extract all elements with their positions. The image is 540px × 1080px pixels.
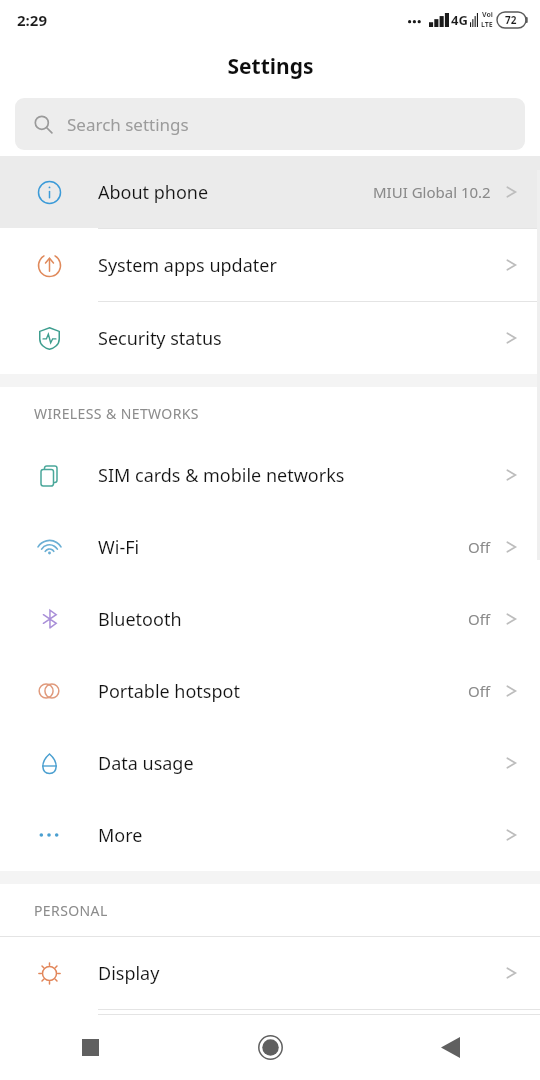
staticText: PERSONAL xyxy=(34,901,108,920)
staticText: Search settings xyxy=(67,113,189,136)
button[interactable]: Display xyxy=(0,937,540,1009)
staticText: Off xyxy=(468,681,491,701)
button[interactable]: Back xyxy=(360,1015,540,1080)
button[interactable]: More xyxy=(0,799,540,871)
staticText: About phone xyxy=(98,180,209,205)
staticText: Bluetooth xyxy=(98,607,182,632)
staticText: Off xyxy=(468,537,491,557)
staticText: 2:29 xyxy=(17,10,47,30)
button[interactable]: Data usage xyxy=(0,727,540,799)
staticText: LTE xyxy=(481,20,493,30)
button[interactable]: Portable hotspot xyxy=(0,655,540,727)
button[interactable]: About phone xyxy=(0,156,540,228)
button[interactable]: Wi-Fi xyxy=(0,511,540,583)
staticText: Settings xyxy=(227,52,314,81)
staticText: Display xyxy=(98,961,160,986)
staticText: System apps updater xyxy=(98,253,277,278)
staticText: Security status xyxy=(98,326,222,351)
staticText: 72 xyxy=(505,13,517,27)
staticText: Off xyxy=(468,609,491,629)
staticText: Wi-Fi xyxy=(98,535,140,560)
staticText: SIM cards & mobile networks xyxy=(98,463,345,488)
staticText: Voi xyxy=(482,10,493,20)
button[interactable]: Recents xyxy=(0,1015,180,1080)
staticText: Portable hotspot xyxy=(98,679,240,704)
staticText: 4G xyxy=(451,11,468,29)
button[interactable]: Home xyxy=(180,1015,360,1080)
staticText: Data usage xyxy=(98,751,194,776)
staticText: MIUI Global 10.2 xyxy=(373,182,491,202)
button[interactable]: Bluetooth xyxy=(0,583,540,655)
button[interactable]: Security status xyxy=(0,302,540,374)
button[interactable]: SIM cards & mobile networks xyxy=(0,439,540,511)
button[interactable]: System apps updater xyxy=(0,229,540,301)
staticText: More xyxy=(98,823,143,848)
button[interactable]: Search settings xyxy=(15,98,525,150)
staticText: WIRELESS & NETWORKS xyxy=(34,404,199,423)
